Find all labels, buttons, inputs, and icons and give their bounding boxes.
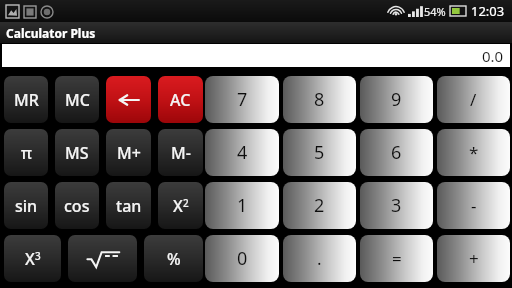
- staticText: =: [392, 247, 402, 270]
- button[interactable]: cos: [55, 182, 99, 229]
- staticText: sin: [15, 195, 38, 217]
- staticText: -: [471, 194, 477, 217]
- button[interactable]: -: [437, 182, 510, 229]
- staticText: 4: [237, 140, 248, 165]
- button[interactable]: 7: [205, 76, 279, 123]
- button[interactable]: .: [283, 235, 356, 282]
- staticText: +: [469, 247, 479, 270]
- button[interactable]: X: [4, 235, 61, 282]
- staticText: 9: [391, 87, 402, 112]
- button[interactable]: 8: [283, 76, 356, 123]
- staticText: 3: [35, 249, 41, 263]
- button[interactable]: π: [4, 129, 48, 176]
- button[interactable]: M+: [106, 129, 151, 176]
- button[interactable]: AC: [158, 76, 203, 123]
- button[interactable]: 4: [205, 129, 279, 176]
- staticText: tan: [116, 195, 142, 217]
- button[interactable]: 6: [360, 129, 433, 176]
- staticText: 0: [237, 246, 248, 271]
- staticText: *: [469, 141, 479, 164]
- button[interactable]: Backspace: [106, 76, 151, 123]
- button[interactable]: 9: [360, 76, 433, 123]
- staticText: 12:03: [471, 2, 505, 20]
- button[interactable]: +: [437, 235, 510, 282]
- staticText: 0.0: [482, 46, 504, 66]
- staticText: %: [167, 248, 181, 270]
- button[interactable]: =: [360, 235, 433, 282]
- button[interactable]: 0: [205, 235, 279, 282]
- staticText: MC: [65, 89, 90, 111]
- button[interactable]: sin: [4, 182, 48, 229]
- button[interactable]: tan: [106, 182, 151, 229]
- staticText: 8: [314, 87, 325, 112]
- staticText: 54%: [424, 4, 446, 19]
- staticText: 7: [237, 87, 248, 112]
- staticText: X: [173, 195, 183, 217]
- button[interactable]: Square root: [68, 235, 137, 282]
- staticText: 2: [183, 196, 189, 210]
- staticText: Calculator Plus: [6, 25, 96, 41]
- staticText: 6: [391, 140, 402, 165]
- button[interactable]: MC: [55, 76, 99, 123]
- staticText: 2: [314, 193, 325, 218]
- staticText: π: [21, 142, 32, 164]
- button[interactable]: 1: [205, 182, 279, 229]
- button[interactable]: MR: [4, 76, 48, 123]
- staticText: 1: [237, 193, 248, 218]
- button[interactable]: 5: [283, 129, 356, 176]
- button[interactable]: 2: [283, 182, 356, 229]
- staticText: 5: [314, 140, 325, 165]
- staticText: /: [470, 88, 477, 111]
- button[interactable]: MS: [55, 129, 99, 176]
- staticText: M+: [117, 142, 141, 164]
- staticText: .: [317, 247, 322, 270]
- staticText: MS: [65, 142, 89, 164]
- staticText: MR: [14, 89, 39, 111]
- staticText: AC: [170, 89, 191, 111]
- staticText: 3: [391, 193, 402, 218]
- button[interactable]: %: [144, 235, 203, 282]
- button[interactable]: /: [437, 76, 510, 123]
- button[interactable]: X: [158, 182, 203, 229]
- button[interactable]: 3: [360, 182, 433, 229]
- staticText: X: [25, 248, 35, 270]
- staticText: cos: [64, 195, 90, 217]
- staticText: M-: [171, 142, 191, 164]
- button[interactable]: M-: [158, 129, 203, 176]
- button[interactable]: *: [437, 129, 510, 176]
